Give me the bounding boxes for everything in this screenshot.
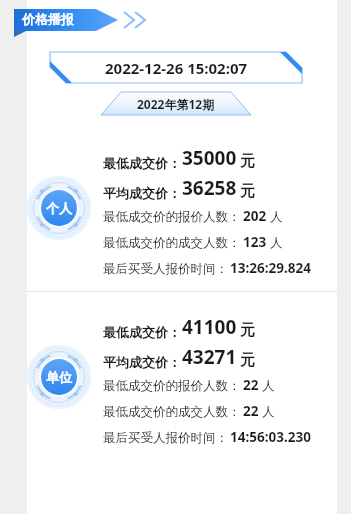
button[interactable]: 单位 bbox=[26, 344, 92, 410]
staticText: 人 bbox=[270, 235, 283, 251]
staticText: 41100 bbox=[182, 314, 237, 340]
staticText: 最低成交价的报价人数： bbox=[103, 209, 241, 225]
staticText: 人 bbox=[262, 378, 275, 394]
staticText: 123 bbox=[243, 233, 267, 251]
staticText: 22 bbox=[243, 376, 259, 394]
staticText: 平均成交价： bbox=[103, 185, 181, 201]
button[interactable]: 2022年第12期 bbox=[101, 92, 251, 115]
staticText: 最后买受人报价时间： bbox=[103, 430, 228, 446]
staticText: 2022-12-26 15:02:07 bbox=[105, 58, 248, 78]
button[interactable]: 价格播报 bbox=[0, 9, 351, 39]
staticText: 元 bbox=[240, 152, 255, 171]
staticText: 202 bbox=[243, 207, 267, 225]
staticText: 35000 bbox=[182, 145, 237, 171]
staticText: 2022年第12期 bbox=[137, 96, 215, 112]
staticText: 最低成交价的报价人数： bbox=[103, 378, 241, 394]
staticText: 平均成交价： bbox=[103, 354, 181, 370]
staticText: 43271 bbox=[182, 344, 237, 370]
staticText: 个人 bbox=[46, 200, 72, 216]
staticText: 最低成交价： bbox=[103, 155, 181, 171]
staticText: 价格播报 bbox=[22, 11, 74, 27]
staticText: 14:56:03.230 bbox=[230, 428, 311, 446]
staticText: 元 bbox=[240, 351, 255, 370]
staticText: 元 bbox=[240, 321, 255, 340]
button[interactable]: 2022-12-26 15:02:07 bbox=[50, 52, 302, 83]
staticText: 最低成交价的成交人数： bbox=[103, 404, 241, 420]
staticText: 人 bbox=[262, 404, 275, 420]
staticText: 人 bbox=[270, 209, 283, 225]
staticText: 13:26:29.824 bbox=[230, 259, 311, 277]
staticText: 单位 bbox=[46, 369, 72, 385]
staticText: 元 bbox=[240, 182, 255, 201]
staticText: 22 bbox=[243, 402, 259, 420]
staticText: 最低成交价的成交人数： bbox=[103, 235, 241, 251]
staticText: 最后买受人报价时间： bbox=[103, 261, 228, 277]
button[interactable]: 个人 bbox=[26, 175, 92, 241]
staticText: 最低成交价： bbox=[103, 324, 181, 340]
staticText: 36258 bbox=[182, 175, 237, 201]
